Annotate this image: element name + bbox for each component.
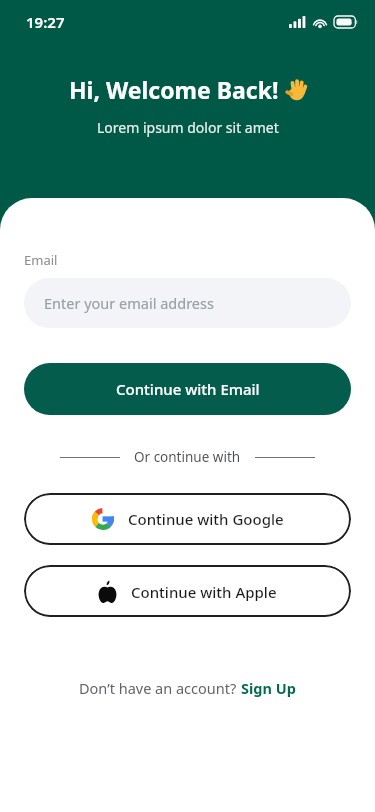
button[interactable]: Enter your email address [24,278,351,328]
other: Waving hand [285,79,307,101]
staticText: Sign Up [241,678,296,698]
staticText: Don’t have an account? [79,678,241,698]
button[interactable]: Apple logo [24,565,351,617]
staticText: 19:27 [26,12,65,32]
other: Apple logo [98,580,117,603]
button[interactable]: Google logo [24,493,351,545]
staticText: Continue with Email [116,379,260,399]
staticText: Lorem ipsum dolor sit amet [97,118,279,137]
staticText: Enter your email address [44,293,214,313]
button[interactable]: Don’t have an account? [24,678,351,698]
staticText: Hi, Welcome Back! [69,74,285,105]
other: Google logo [92,508,114,530]
staticText: Or continue with [134,448,241,466]
staticText: Email [24,251,58,269]
staticText: Continue with Google [128,509,284,529]
staticText: Continue with Apple [131,582,277,602]
button[interactable]: Continue with Email [24,363,351,415]
